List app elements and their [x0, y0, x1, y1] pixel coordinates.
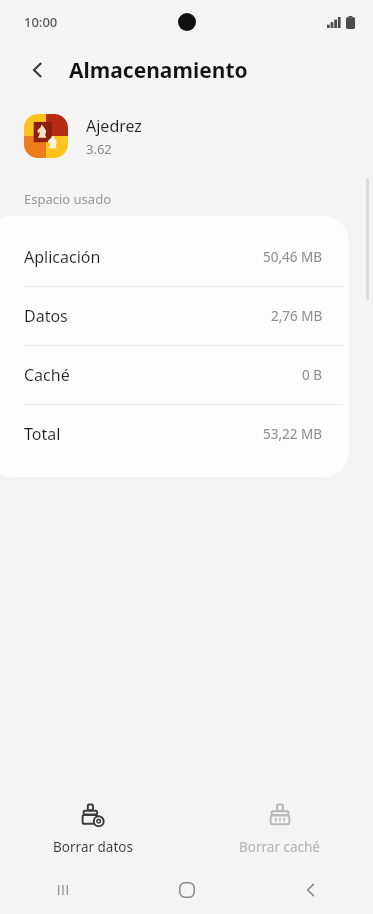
- staticText: Caché: [24, 364, 70, 386]
- staticText: 2,76 MB: [271, 307, 323, 325]
- staticText: Borrar datos: [53, 838, 133, 856]
- button[interactable]: Back: [18, 50, 58, 90]
- staticText: 0 B: [302, 366, 323, 384]
- button[interactable]: Borrar datos: [0, 797, 186, 862]
- button[interactable]: Borrar caché: [186, 797, 373, 862]
- button[interactable]: Datos: [0, 287, 349, 345]
- staticText: Borrar caché: [239, 838, 320, 856]
- button[interactable]: Home: [125, 865, 249, 914]
- button[interactable]: Total: [0, 405, 349, 477]
- staticText: Ajedrez: [86, 115, 142, 137]
- staticText: 50,46 MB: [263, 248, 323, 266]
- staticText: Aplicación: [24, 246, 101, 268]
- button[interactable]: Aplicación: [0, 216, 349, 286]
- button[interactable]: Caché: [0, 346, 349, 404]
- button[interactable]: Back: [249, 865, 373, 914]
- staticText: Almacenamiento: [69, 56, 248, 85]
- staticText: 53,22 MB: [263, 425, 323, 443]
- button[interactable]: Recent apps: [0, 865, 125, 914]
- staticText: 10:00: [24, 13, 58, 31]
- staticText: Total: [24, 423, 61, 445]
- staticText: Espacio usado: [24, 190, 111, 208]
- staticText: Datos: [24, 305, 68, 327]
- staticText: 3.62: [86, 140, 112, 158]
